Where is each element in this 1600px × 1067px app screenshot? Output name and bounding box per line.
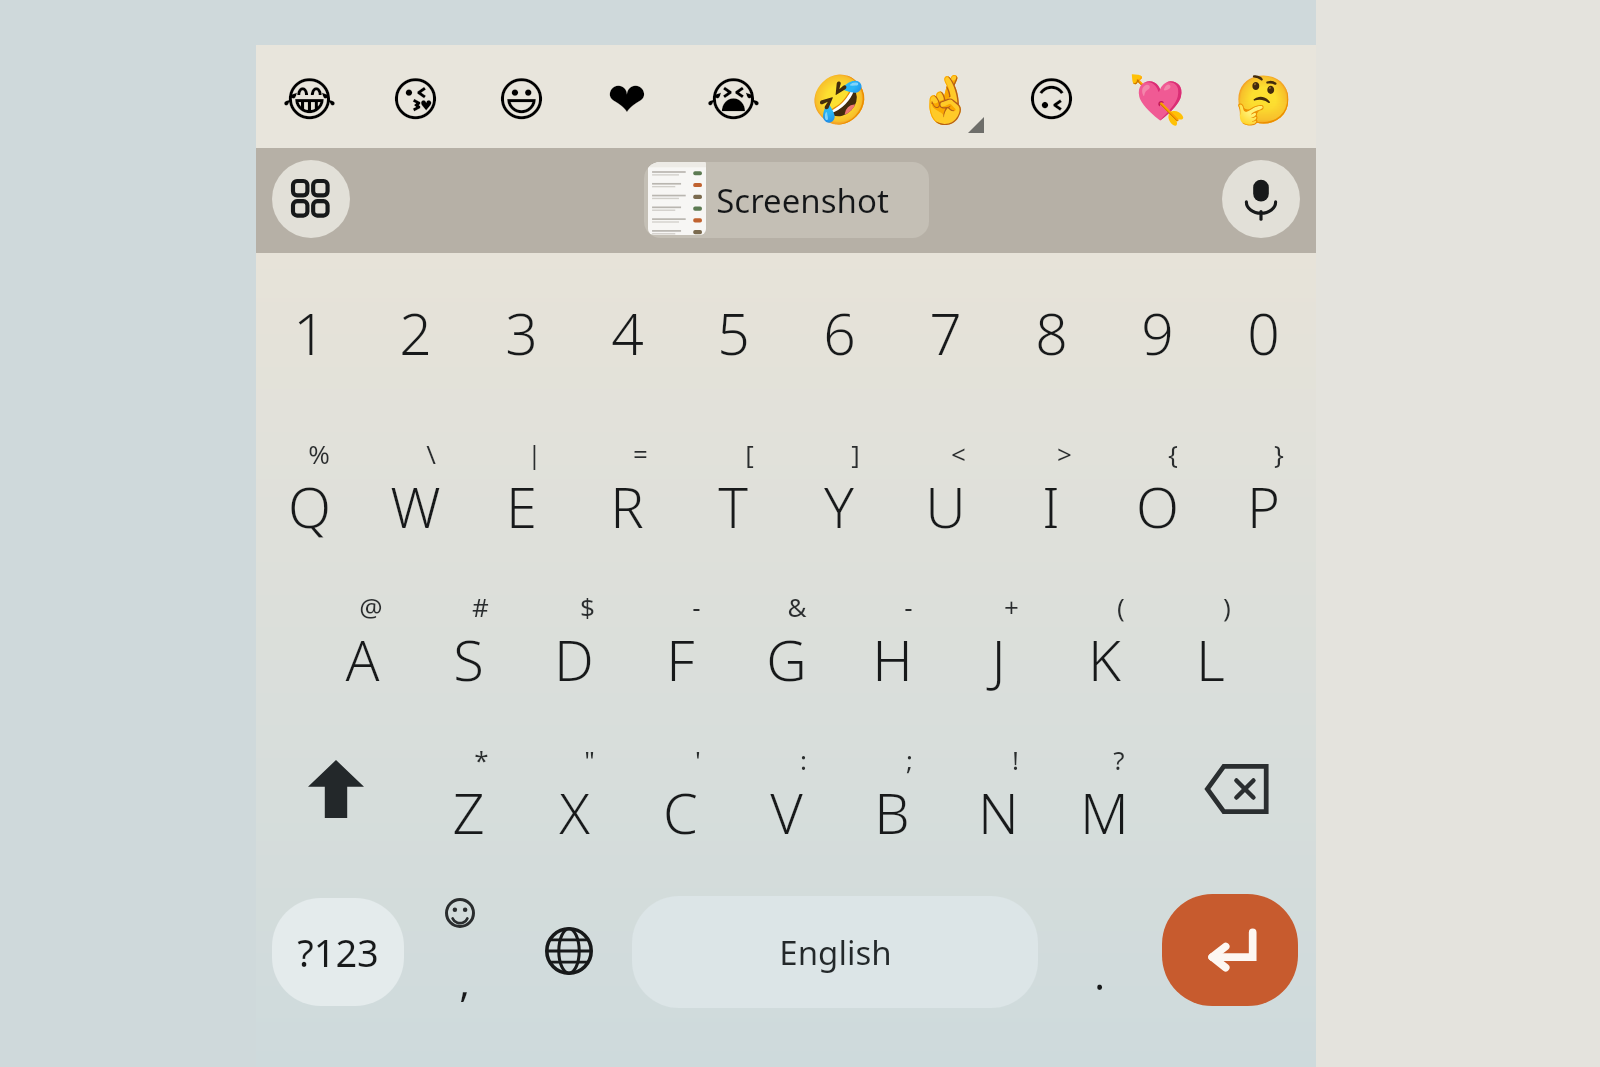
- staticText: -: [692, 589, 701, 624]
- button[interactable]: [: [680, 408, 786, 558]
- button[interactable]: (: [1051, 561, 1157, 711]
- button[interactable]: Shift: [256, 714, 415, 864]
- button[interactable]: Backspace: [1157, 714, 1316, 864]
- button[interactable]: ]: [786, 408, 892, 558]
- button[interactable]: ,: [421, 878, 507, 1028]
- button[interactable]: Screenshot: [644, 162, 929, 238]
- button[interactable]: !: [945, 714, 1051, 864]
- staticText: ,: [459, 954, 470, 1008]
- button[interactable]: :: [733, 714, 839, 864]
- staticText: 0: [1247, 294, 1280, 372]
- staticText: =: [633, 436, 648, 471]
- button[interactable]: 2: [362, 258, 468, 408]
- button[interactable]: 😃: [468, 45, 574, 148]
- staticText: Q: [288, 468, 331, 544]
- staticText: F: [666, 621, 695, 697]
- staticText: <: [951, 436, 966, 471]
- staticText: Screenshot: [716, 178, 889, 223]
- staticText: >: [1057, 436, 1072, 471]
- button[interactable]: 6: [786, 258, 892, 408]
- button[interactable]: .: [1056, 896, 1142, 1008]
- staticText: &: [787, 589, 807, 624]
- staticText: ): [1223, 589, 1231, 624]
- staticText: G: [766, 621, 807, 697]
- staticText: W: [390, 468, 441, 544]
- staticText: D: [554, 621, 594, 697]
- button[interactable]: 🤣: [786, 45, 892, 148]
- button[interactable]: 3: [468, 258, 574, 408]
- button[interactable]: 1: [256, 258, 362, 408]
- staticText: H: [872, 621, 913, 697]
- button[interactable]: 😘: [362, 45, 468, 148]
- staticText: 🤞: [916, 72, 975, 127]
- staticText: $: [580, 589, 595, 624]
- button[interactable]: -: [839, 561, 945, 711]
- button[interactable]: 🤞: [892, 45, 998, 148]
- button[interactable]: 7: [892, 258, 998, 408]
- button[interactable]: -: [627, 561, 733, 711]
- button[interactable]: 🙃: [998, 45, 1104, 148]
- button[interactable]: $: [521, 561, 627, 711]
- button[interactable]: Voice input: [1222, 160, 1300, 238]
- button[interactable]: 😂: [256, 45, 362, 148]
- button[interactable]: 9: [1104, 258, 1210, 408]
- button[interactable]: 5: [680, 258, 786, 408]
- button[interactable]: ;: [839, 714, 945, 864]
- staticText: (: [1117, 589, 1125, 624]
- staticText: 5: [717, 294, 750, 372]
- button[interactable]: >: [998, 408, 1104, 558]
- staticText: 7: [929, 294, 962, 372]
- staticText: L: [1196, 621, 1225, 697]
- staticText: 🤣: [810, 72, 869, 127]
- staticText: @: [359, 589, 383, 624]
- staticText: K: [1088, 621, 1121, 697]
- button[interactable]: @: [309, 561, 415, 711]
- button[interactable]: 💘: [1104, 45, 1210, 148]
- staticText: V: [770, 774, 803, 850]
- button[interactable]: ': [627, 714, 733, 864]
- button[interactable]: |: [468, 408, 574, 558]
- button[interactable]: 4: [574, 258, 680, 408]
- button[interactable]: 🤔: [1210, 45, 1316, 148]
- button[interactable]: English: [632, 896, 1038, 1008]
- button[interactable]: ": [521, 714, 627, 864]
- staticText: 3: [505, 294, 538, 372]
- button[interactable]: 0: [1210, 258, 1316, 408]
- staticText: B: [874, 774, 910, 850]
- staticText: #: [472, 589, 489, 624]
- button[interactable]: {: [1104, 408, 1210, 558]
- staticText: Z: [452, 774, 485, 850]
- button[interactable]: Enter: [1162, 894, 1298, 1006]
- button[interactable]: 😭: [680, 45, 786, 148]
- staticText: [: [745, 436, 754, 471]
- staticText: N: [978, 774, 1019, 850]
- staticText: 1: [293, 294, 326, 372]
- staticText: Y: [824, 468, 854, 544]
- button[interactable]: \: [362, 408, 468, 558]
- staticText: !: [1012, 742, 1019, 777]
- button[interactable]: *: [415, 714, 521, 864]
- button[interactable]: Change language: [524, 896, 614, 1006]
- button[interactable]: ): [1157, 561, 1263, 711]
- staticText: 😭: [706, 72, 761, 127]
- button[interactable]: ❤️: [574, 45, 680, 148]
- staticText: M: [1080, 774, 1129, 850]
- button[interactable]: ?123: [272, 898, 404, 1006]
- button[interactable]: <: [892, 408, 998, 558]
- button[interactable]: }: [1210, 408, 1316, 558]
- button[interactable]: %: [256, 408, 362, 558]
- staticText: 😂: [282, 72, 337, 127]
- button[interactable]: =: [574, 408, 680, 558]
- button[interactable]: &: [733, 561, 839, 711]
- staticText: |: [527, 436, 542, 471]
- button[interactable]: ?: [1051, 714, 1157, 864]
- staticText: O: [1136, 468, 1179, 544]
- button[interactable]: #: [415, 561, 521, 711]
- button[interactable]: +: [945, 561, 1051, 711]
- staticText: 🙃: [1027, 72, 1076, 127]
- staticText: 😘: [391, 72, 440, 127]
- staticText: R: [610, 468, 644, 544]
- staticText: ': [695, 742, 701, 777]
- button[interactable]: Keyboard modes: [272, 160, 350, 238]
- button[interactable]: 8: [998, 258, 1104, 408]
